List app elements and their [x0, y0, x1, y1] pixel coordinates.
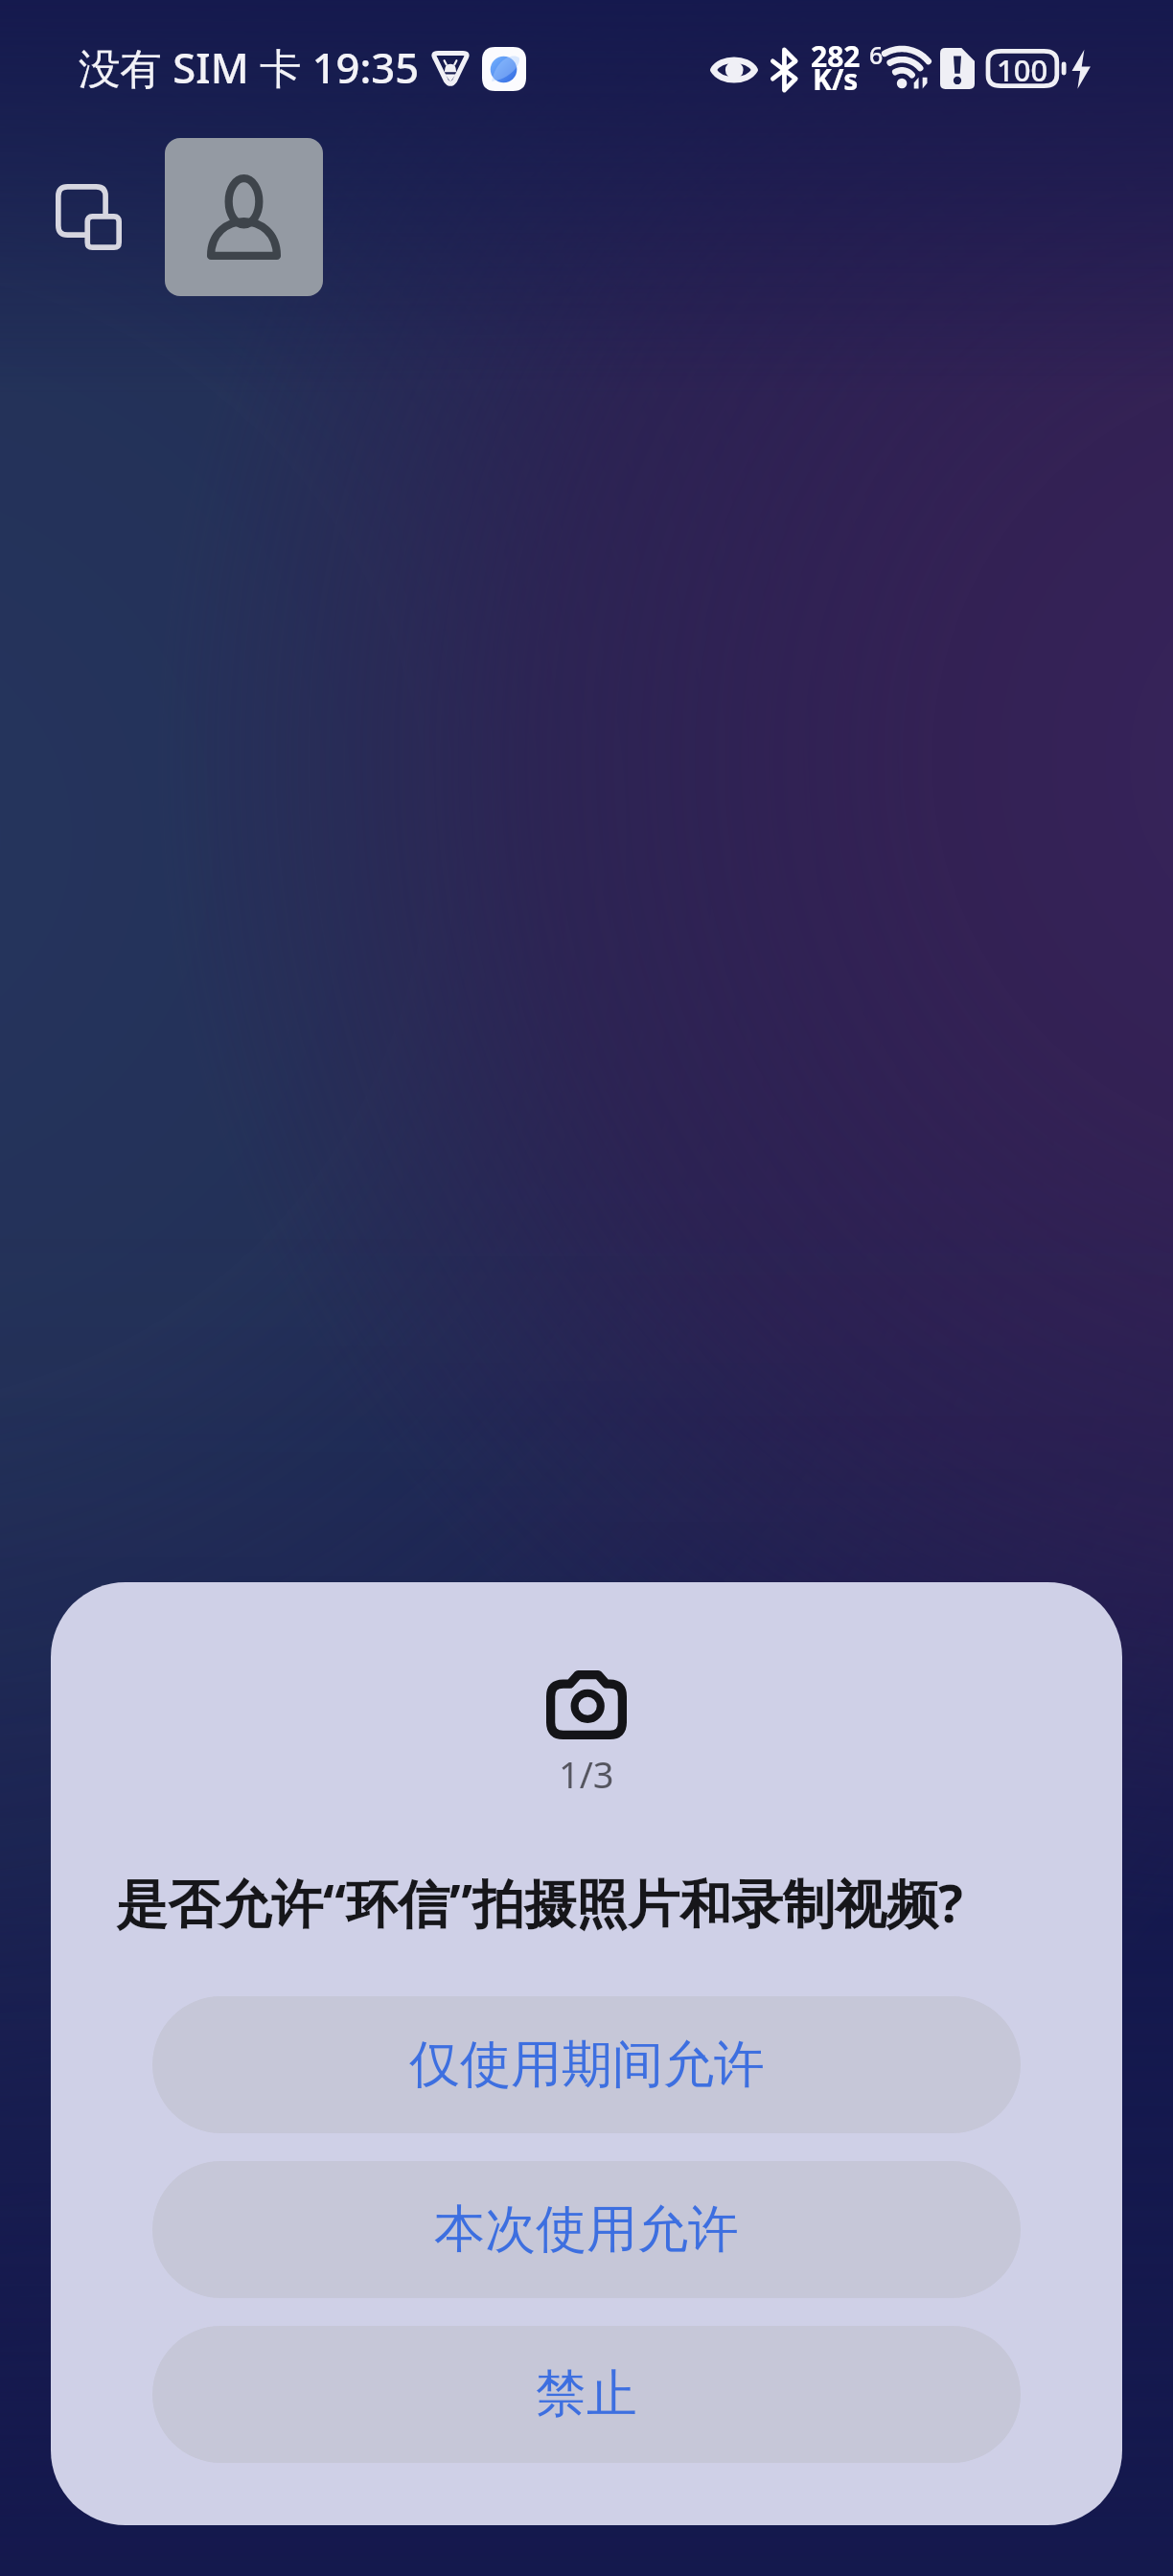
staticText: 6: [869, 38, 884, 71]
button[interactable]: Split screen: [56, 184, 122, 250]
staticText: 本次使用允许: [434, 2197, 739, 2262]
staticText: K/s: [813, 59, 859, 99]
staticText: 100: [997, 50, 1048, 87]
staticText: 没有 SIM 卡 19:35: [79, 38, 420, 95]
button[interactable]: Account: [165, 138, 323, 296]
staticText: 是否允许“环信”拍摄照片和录制视频?: [116, 1867, 963, 1938]
staticText: 禁止: [536, 2362, 637, 2426]
staticText: 282: [811, 36, 861, 76]
button[interactable]: 禁止: [152, 2326, 1021, 2463]
staticText: 仅使用期间允许: [409, 2033, 765, 2097]
button[interactable]: 仅使用期间允许: [152, 1996, 1021, 2133]
staticText: 1/3: [559, 1749, 614, 1799]
button[interactable]: 本次使用允许: [152, 2161, 1021, 2298]
